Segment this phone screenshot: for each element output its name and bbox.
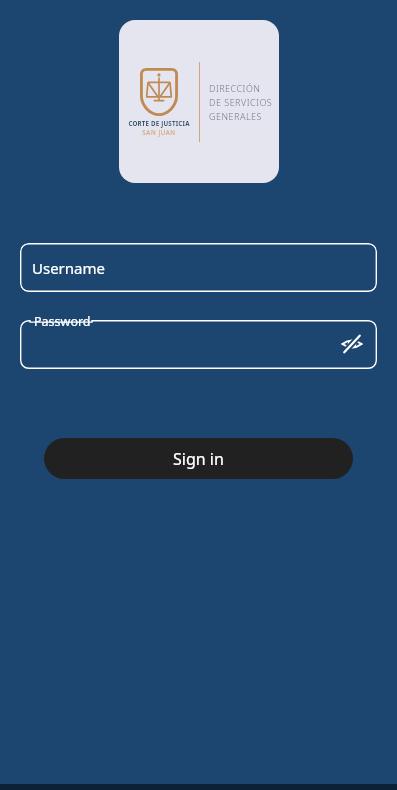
staticText: SAN JUAN <box>142 128 176 136</box>
staticText: DE SERVICIOS <box>209 96 273 108</box>
staticText: Sign in <box>173 448 224 470</box>
button[interactable]: Username <box>20 243 377 292</box>
button[interactable] <box>20 320 377 369</box>
staticText: Password <box>34 313 91 330</box>
button[interactable]: Sign in <box>44 438 353 479</box>
staticText: CORTE DE JUSTICIA <box>128 119 190 127</box>
staticText: GENERALES <box>209 110 262 122</box>
staticText: DIRECCIÓN <box>209 82 261 94</box>
staticText: Username <box>32 258 105 278</box>
button[interactable]: Show password <box>333 325 371 363</box>
